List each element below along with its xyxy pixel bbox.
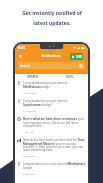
staticText: Congratulations you just earned Superlea… — [23, 99, 85, 107]
button[interactable]: Here's what we have done to improve your… — [15, 115, 88, 136]
staticText: 9:41 — [18, 45, 25, 50]
staticText: NEWS — [66, 75, 74, 79]
staticText: Get instantly notified of — [22, 10, 82, 17]
button[interactable]: Congratulations you just earned Superlea… — [15, 97, 88, 115]
button[interactable]: Congratulations you just earned Mindmast… — [15, 160, 88, 178]
staticText: Notifications — [41, 54, 61, 58]
staticText: Here's what we have done to improve your… — [23, 117, 85, 128]
button[interactable]: UPDATES — [15, 75, 51, 79]
staticText: 1 day ago — [23, 130, 34, 133]
button[interactable]: New tactics have been just launched for … — [15, 136, 88, 160]
staticText: UPDATES — [27, 75, 39, 79]
staticText: 2 days ago — [23, 154, 36, 157]
staticText: 5 hours ago — [23, 109, 37, 112]
button[interactable]: Notification count — [70, 53, 83, 60]
staticText: 3 days ago — [23, 172, 36, 175]
button[interactable]: NEWS — [51, 75, 88, 79]
staticText: Search — [20, 64, 30, 68]
staticText: 130 — [76, 54, 82, 59]
staticText: New tactics have been just launched for … — [23, 138, 85, 152]
staticText: Congratulations you just earned Mindmast… — [23, 162, 85, 170]
button[interactable]: Search — [18, 62, 85, 69]
staticText: Congratulations you just earned Mindfuln… — [23, 81, 85, 89]
staticText: 2 hours ago — [23, 91, 37, 94]
button[interactable]: Open navigation menu — [17, 53, 23, 59]
staticText: latest updates. — [33, 20, 71, 27]
button[interactable]: Congratulations you just earned Mindfuln… — [15, 79, 88, 97]
